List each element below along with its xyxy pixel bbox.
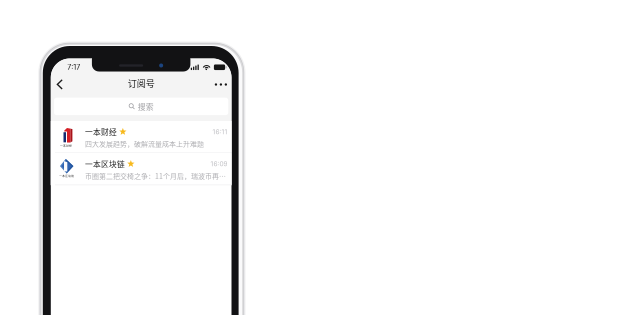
staticText: 一本财经 [85, 126, 117, 137]
staticText: 一本区块链 [59, 174, 74, 178]
button[interactable]: Back [52, 75, 68, 94]
staticText: 16:11 [212, 128, 227, 136]
staticText: 搜索 [138, 101, 154, 112]
staticText: 7:17 [67, 63, 80, 72]
button[interactable]: 一本财经 [51, 121, 231, 152]
staticText: 16:09 [210, 160, 227, 168]
staticText: 币圈第二把交椅之争：11个月后，瑞波币再… [85, 171, 226, 181]
staticText: 四大发展趋势，破解流量成本上升难题 [85, 138, 204, 148]
button[interactable]: 一本区块链 [51, 153, 231, 185]
staticText: 一本区块链 [85, 158, 125, 169]
staticText: 一本财经 [60, 143, 72, 147]
staticText: 订阅号 [128, 76, 155, 89]
button[interactable]: More options [212, 75, 230, 94]
